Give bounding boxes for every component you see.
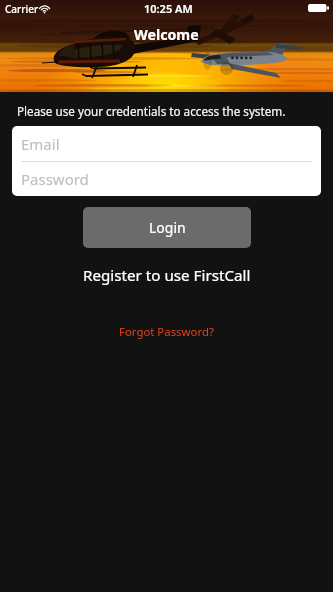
staticText: Login [149,218,186,237]
staticText: Carrier [5,2,39,16]
staticText: Email [21,134,60,154]
staticText: Welcome [134,25,199,44]
button[interactable]: Register to use FirstCall [73,260,261,291]
staticText: 10:25 AM [144,1,193,16]
staticText: Password [21,169,89,189]
button[interactable]: Login [83,207,251,248]
button[interactable]: Forgot Password? [109,319,224,345]
staticText: Please use your credentials to access th… [17,103,286,119]
staticText: Forgot Password? [119,324,214,340]
button[interactable]: Password [12,162,321,196]
staticText: Register to use FirstCall [83,265,251,286]
button[interactable]: Email [12,126,321,161]
